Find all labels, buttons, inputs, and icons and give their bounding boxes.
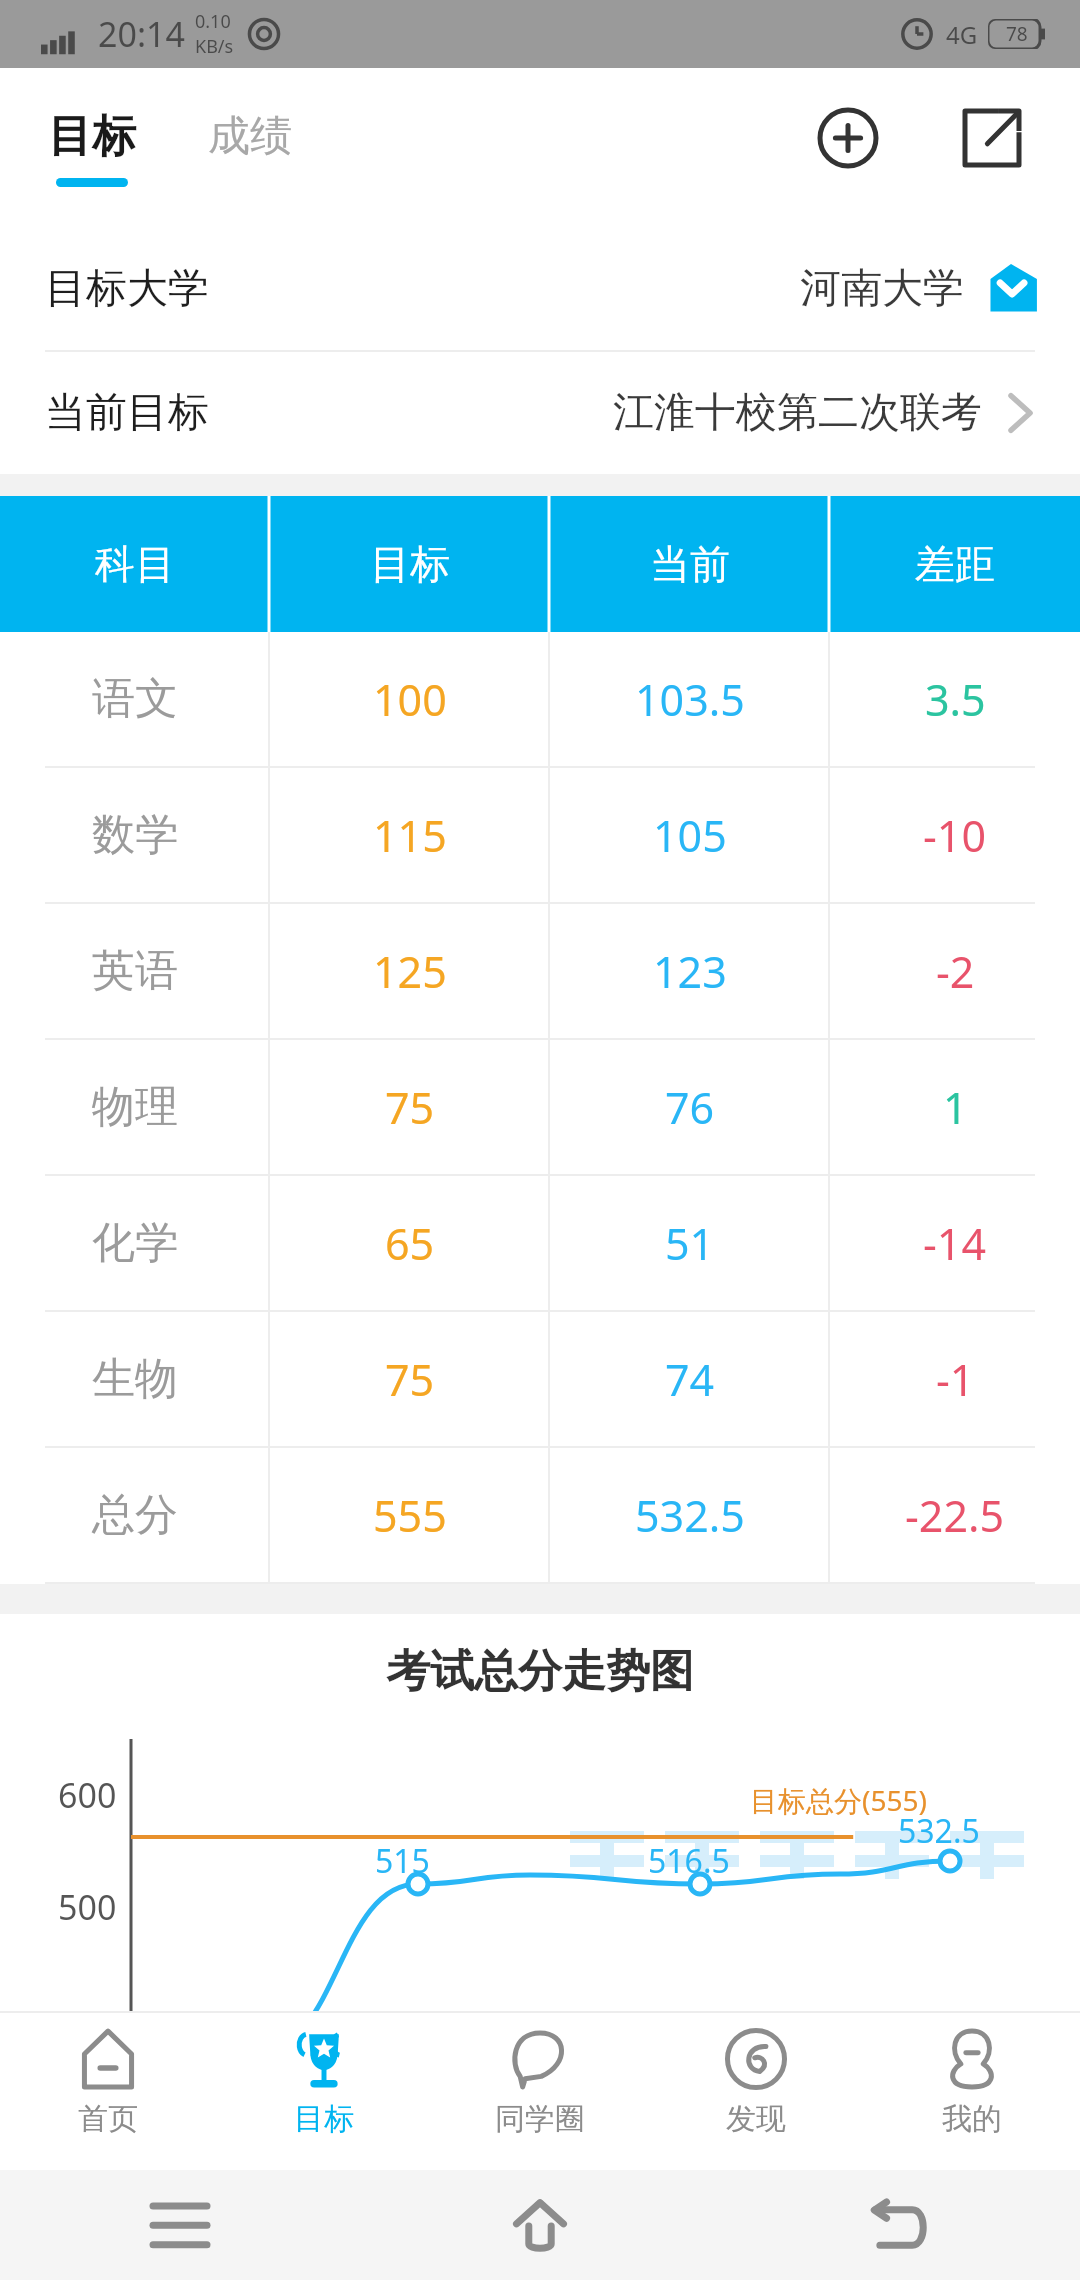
staticText: 成绩 xyxy=(208,110,292,163)
staticText: 51 xyxy=(665,1214,715,1273)
staticText: 差距 xyxy=(915,539,995,589)
button[interactable]: 目标大学 xyxy=(0,228,1080,350)
staticText: 1 xyxy=(943,1078,968,1137)
staticText: 515 xyxy=(375,1839,430,1883)
staticText: 75 xyxy=(385,1078,435,1137)
staticText: 3.5 xyxy=(925,670,986,729)
staticText: 目标 xyxy=(294,2100,354,2138)
staticText: 115 xyxy=(373,806,447,865)
button[interactable]: Back xyxy=(720,2170,1080,2280)
button[interactable]: 当前目标 xyxy=(0,352,1080,474)
staticText: 语文 xyxy=(92,672,178,726)
button[interactable]: 化学 xyxy=(0,1176,1080,1310)
staticText: -22.5 xyxy=(905,1486,1005,1545)
staticText: 目标 xyxy=(370,539,450,589)
staticText: 516.5 xyxy=(648,1839,730,1883)
staticText: 目标大学 xyxy=(45,263,209,315)
staticText: 化学 xyxy=(92,1216,178,1270)
button[interactable]: 成绩 xyxy=(202,118,298,179)
staticText: 总分 xyxy=(92,1488,178,1542)
staticText: 125 xyxy=(373,942,447,1001)
staticText: 105 xyxy=(653,806,727,865)
staticText: 74 xyxy=(665,1350,715,1409)
staticText: 555 xyxy=(373,1486,447,1545)
staticText: 123 xyxy=(653,942,727,1001)
button[interactable]: Home xyxy=(360,2170,720,2280)
button[interactable]: 语文 xyxy=(0,632,1080,766)
staticText: -14 xyxy=(923,1214,987,1273)
staticText: 76 xyxy=(665,1078,715,1137)
staticText: 78 xyxy=(1006,21,1028,47)
staticText: 同学圈 xyxy=(495,2100,585,2138)
staticText: 科目 xyxy=(95,539,175,589)
button[interactable]: 发现 xyxy=(648,2012,864,2170)
button[interactable]: 目标 xyxy=(42,109,142,187)
staticText: 首页 xyxy=(78,2100,138,2138)
staticText: 4G xyxy=(946,18,978,51)
button[interactable]: 生物 xyxy=(0,1312,1080,1446)
button[interactable]: Share xyxy=(950,96,1034,180)
staticText: 532.5 xyxy=(635,1486,745,1545)
staticText: 考试总分走势图 xyxy=(386,1644,694,1699)
button[interactable]: 数学 xyxy=(0,768,1080,902)
staticText: -10 xyxy=(923,806,987,865)
button[interactable]: 物理 xyxy=(0,1040,1080,1174)
staticText: 物理 xyxy=(92,1080,178,1134)
staticText: 103.5 xyxy=(635,670,745,729)
staticText: 目标总分(555) xyxy=(750,1781,927,1819)
staticText: KB/s xyxy=(195,34,234,59)
button[interactable]: 总分 xyxy=(0,1448,1080,1582)
staticText: 100 xyxy=(373,670,447,729)
staticText: 当前 xyxy=(650,539,730,589)
button[interactable]: 同学圈 xyxy=(432,2012,648,2170)
staticText: 英语 xyxy=(92,944,178,998)
staticText: 数学 xyxy=(92,808,178,862)
staticText: 500 xyxy=(58,1884,117,1930)
staticText: 75 xyxy=(385,1350,435,1409)
staticText: 江淮十校第二次联考 xyxy=(613,387,982,439)
staticText: 发现 xyxy=(726,2100,786,2138)
button[interactable]: 首页 xyxy=(0,2012,216,2170)
button[interactable]: Add goal xyxy=(806,96,890,180)
staticText: 当前目标 xyxy=(45,387,209,439)
button[interactable]: 目标 xyxy=(216,2012,432,2170)
button[interactable]: Recent apps xyxy=(0,2170,360,2280)
button[interactable]: 英语 xyxy=(0,904,1080,1038)
staticText: 目标 xyxy=(48,109,136,164)
staticText: 600 xyxy=(58,1772,117,1818)
button[interactable]: 我的 xyxy=(864,2012,1080,2170)
staticText: 532.5 xyxy=(898,1809,980,1853)
staticText: 生物 xyxy=(92,1352,178,1406)
staticText: 河南大学 xyxy=(800,263,964,315)
staticText: 我的 xyxy=(942,2100,1002,2138)
staticText: 65 xyxy=(385,1214,435,1273)
staticText: -1 xyxy=(936,1350,975,1409)
staticText: 20:14 xyxy=(98,11,185,57)
staticText: -2 xyxy=(936,942,975,1001)
staticText: 0.10 xyxy=(195,9,231,34)
